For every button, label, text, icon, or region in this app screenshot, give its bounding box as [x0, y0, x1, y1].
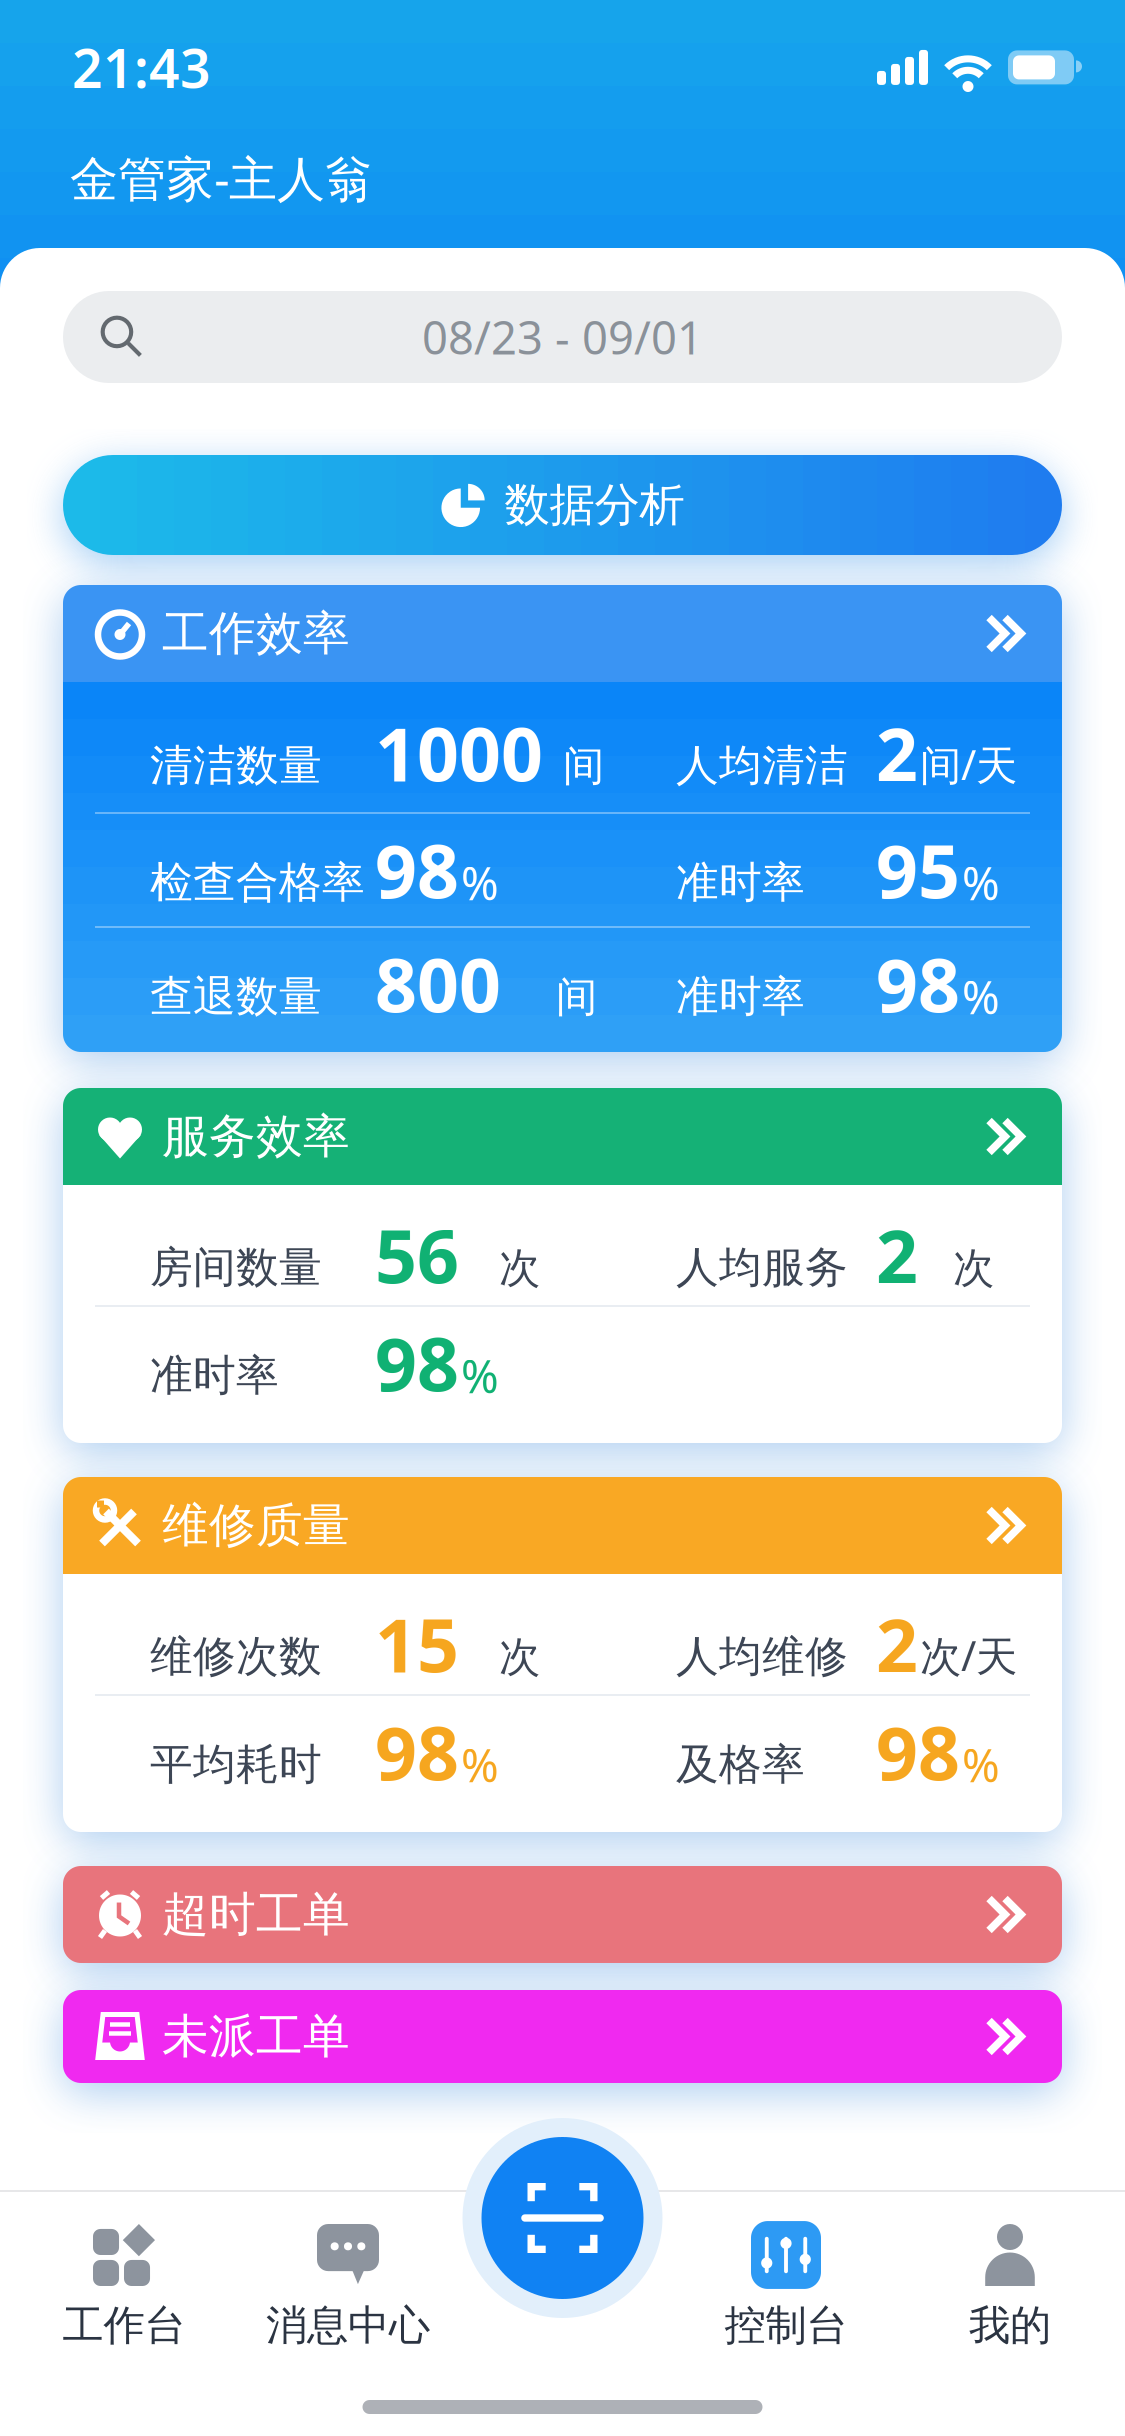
staticText: 800	[375, 935, 501, 1033]
staticText: %	[962, 966, 1000, 1027]
staticText: 人均清洁	[676, 739, 848, 792]
staticText: 2	[876, 1206, 918, 1304]
staticText: 人均维修	[676, 1630, 848, 1683]
staticText: %	[461, 1345, 499, 1406]
staticText: 2	[876, 1595, 918, 1693]
staticText: 平均耗时	[150, 1738, 322, 1791]
staticText: 次	[499, 1632, 540, 1683]
staticText: 数据分析	[504, 477, 684, 533]
staticText: 控制台	[724, 2300, 847, 2351]
staticText: 次	[953, 1243, 994, 1294]
staticText: 人均服务	[676, 1241, 848, 1294]
staticText: 准时率	[676, 970, 805, 1023]
staticText: 21:43	[72, 32, 211, 103]
staticText: 准时率	[676, 856, 805, 909]
staticText: 次/天	[920, 1628, 1017, 1683]
staticText: 清洁数量	[150, 739, 322, 792]
staticText: 我的	[969, 2300, 1051, 2351]
staticText: 工作台	[62, 2300, 185, 2351]
staticText: 08/23 - 09/01	[422, 307, 703, 367]
staticText: 98	[876, 935, 960, 1033]
staticText: 房间数量	[150, 1241, 322, 1294]
staticText: %	[461, 1734, 499, 1795]
button[interactable]: 维修质量	[63, 1477, 1062, 1832]
button[interactable]: 超时工单	[63, 1866, 1062, 1963]
staticText: 工作效率	[162, 605, 350, 662]
staticText: 98	[375, 1314, 459, 1412]
staticText: 金管家-主人翁	[70, 146, 373, 210]
button[interactable]: 数据分析	[63, 455, 1062, 555]
button[interactable]: 消息中心	[236, 2220, 460, 2351]
button[interactable]: 08/23 - 09/01	[63, 291, 1062, 383]
staticText: 间	[563, 741, 604, 792]
staticText: 56	[375, 1206, 459, 1304]
button[interactable]: 工作效率	[63, 585, 1062, 1052]
staticText: 1000	[375, 704, 543, 802]
staticText: 维修质量	[162, 1497, 350, 1554]
staticText: %	[461, 852, 499, 913]
staticText: 未派工单	[162, 2008, 350, 2065]
button[interactable]: 控制台	[674, 2220, 898, 2351]
staticText: 15	[375, 1595, 459, 1693]
staticText: 间	[556, 972, 597, 1023]
button[interactable]: 扫一扫	[462, 2118, 662, 2318]
staticText: 检查合格率	[150, 856, 365, 909]
staticText: 超时工单	[162, 1886, 350, 1943]
staticText: 维修次数	[150, 1630, 322, 1683]
staticText: 次	[499, 1243, 540, 1294]
staticText: 98	[375, 821, 459, 919]
staticText: 2	[876, 704, 918, 802]
staticText: 98	[375, 1703, 459, 1801]
staticText: %	[962, 852, 1000, 913]
button[interactable]: 未派工单	[63, 1990, 1062, 2083]
staticText: 查退数量	[150, 970, 322, 1023]
staticText: 及格率	[676, 1738, 805, 1791]
staticText: 服务效率	[162, 1108, 350, 1165]
button[interactable]: 服务效率	[63, 1088, 1062, 1443]
button[interactable]: 工作台	[12, 2220, 236, 2351]
staticText: 间/天	[920, 737, 1017, 792]
staticText: 95	[876, 821, 960, 919]
staticText: %	[962, 1734, 1000, 1795]
button[interactable]: 我的	[898, 2220, 1122, 2351]
staticText: 消息中心	[266, 2300, 430, 2351]
staticText: 98	[876, 1703, 960, 1801]
staticText: 准时率	[150, 1349, 279, 1402]
